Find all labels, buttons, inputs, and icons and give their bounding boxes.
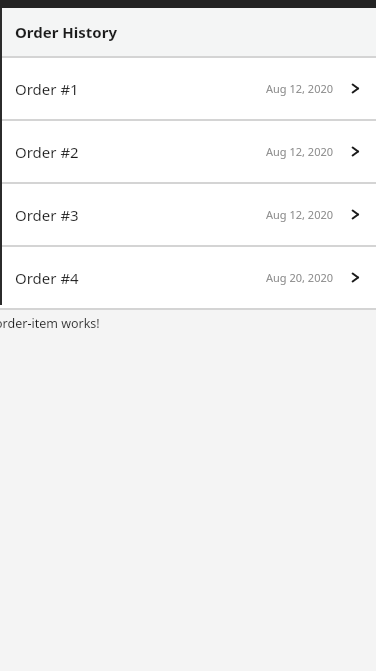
- staticText: Order #1: [15, 79, 79, 99]
- button[interactable]: Order #2: [0, 121, 376, 182]
- staticText: Order #3: [15, 205, 79, 225]
- button[interactable]: Order #4: [0, 247, 376, 308]
- staticText: order-item works!: [0, 315, 100, 332]
- staticText: Aug 12, 2020: [266, 207, 334, 222]
- button[interactable]: Order #1: [0, 58, 376, 119]
- staticText: Aug 20, 2020: [266, 270, 334, 285]
- staticText: Order History: [15, 22, 117, 42]
- staticText: Aug 12, 2020: [266, 81, 334, 96]
- staticText: Aug 12, 2020: [266, 144, 334, 159]
- other: Open Order #2 details: [349, 145, 362, 158]
- staticText: Order #2: [15, 142, 79, 162]
- staticText: Order #4: [15, 268, 79, 288]
- button[interactable]: Order History: [0, 8, 376, 56]
- other: Open Order #3 details: [349, 208, 362, 221]
- other: Open Order #1 details: [349, 82, 362, 95]
- button[interactable]: Order #3: [0, 184, 376, 245]
- other: Open Order #4 details: [349, 271, 362, 284]
